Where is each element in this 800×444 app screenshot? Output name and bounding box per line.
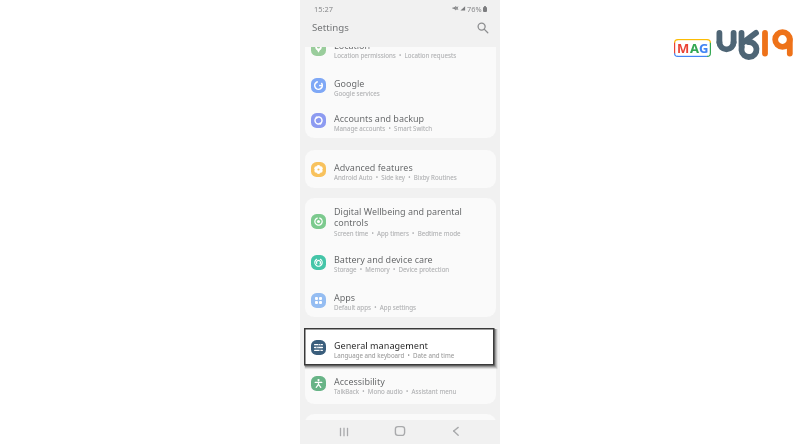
button[interactable] (305, 244, 496, 280)
staticText: Location (334, 47, 371, 51)
staticText: Settings (312, 21, 349, 34)
staticText: General management (334, 340, 427, 352)
staticText: A (690, 39, 699, 57)
staticText: Advanced features (334, 161, 413, 173)
button[interactable] (305, 47, 496, 66)
staticText: Google services (334, 89, 380, 97)
staticText: Apps (334, 291, 356, 303)
button[interactable]: Home (392, 423, 408, 439)
staticText: M (677, 39, 690, 57)
staticText: Accessibility (334, 375, 385, 387)
staticText: Manage accounts • Smart Switch (334, 124, 432, 132)
staticText: Google (334, 77, 365, 89)
button[interactable]: Back (448, 423, 464, 439)
staticText: 15:27 (314, 4, 333, 14)
staticText: Battery and device care (334, 253, 433, 265)
button[interactable] (305, 282, 496, 318)
button[interactable] (305, 103, 496, 139)
staticText: General management (334, 339, 429, 351)
button[interactable]: Recents (336, 424, 352, 440)
staticText: Digital Wellbeing and parental (334, 205, 462, 217)
staticText: Language and keyboard • Date and time (334, 351, 455, 359)
staticText: Android Auto • Side key • Bixby Routines (334, 173, 457, 181)
staticText: controls (334, 216, 369, 228)
staticText: Storage • Memory • Device protection (334, 265, 450, 273)
staticText: Screen time • App timers • Bedtime mode (334, 229, 461, 237)
button[interactable]: Search (475, 20, 490, 35)
button[interactable] (305, 331, 496, 367)
button[interactable] (305, 366, 496, 402)
staticText: Location permissions • Location requests (334, 51, 457, 59)
staticText: Language and keyboard • Date and time (334, 352, 455, 360)
staticText: TalkBack • Mono audio • Assistant menu (334, 387, 457, 395)
button[interactable] (305, 198, 496, 242)
staticText: Accounts and backup (334, 112, 425, 124)
button[interactable] (300, 325, 500, 375)
staticText: 76% (467, 4, 482, 14)
button[interactable] (305, 152, 496, 188)
staticText: G (699, 39, 709, 57)
button[interactable] (305, 68, 496, 104)
staticText: Default apps • App settings (334, 303, 416, 311)
